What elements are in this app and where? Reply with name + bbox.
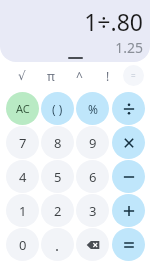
button[interactable]: Multiply [112, 126, 145, 159]
staticText: 4 [19, 168, 27, 186]
button[interactable]: 7 [6, 126, 39, 159]
staticText: π [47, 68, 55, 84]
staticText: = [131, 70, 136, 81]
staticText: % [88, 101, 98, 117]
button[interactable]: 2 [41, 194, 74, 227]
button[interactable]: Equals [112, 228, 145, 261]
button[interactable]: ( ) [41, 92, 74, 125]
button[interactable]: % [76, 92, 109, 125]
button[interactable]: Subtract [112, 160, 145, 193]
button[interactable]: 1 [6, 194, 39, 227]
button[interactable]: 0 [6, 228, 39, 261]
staticText: 2 [54, 202, 62, 220]
staticText: 1÷.80 [84, 6, 143, 37]
staticText: 5 [54, 168, 62, 186]
staticText: ! [106, 68, 110, 84]
button[interactable]: ! [95, 63, 121, 89]
staticText: 8 [54, 134, 62, 152]
button[interactable]: Add [112, 194, 145, 227]
button[interactable]: 4 [6, 160, 39, 193]
button[interactable]: 3 [76, 194, 109, 227]
button[interactable]: More functions [123, 65, 144, 86]
button[interactable]: √ [9, 63, 35, 89]
button[interactable]: . [41, 228, 74, 261]
staticText: ( ) [52, 101, 63, 117]
button[interactable]: Divide [112, 92, 145, 125]
staticText: AC [16, 101, 30, 116]
button[interactable]: π [38, 63, 64, 89]
staticText: ^ [76, 68, 83, 84]
button[interactable]: 9 [76, 126, 109, 159]
button[interactable]: 5 [41, 160, 74, 193]
button[interactable]: 8 [41, 126, 74, 159]
staticText: 6 [89, 168, 97, 186]
staticText: 0 [19, 236, 27, 254]
button[interactable]: ^ [66, 63, 92, 89]
button[interactable]: Backspace [76, 228, 109, 261]
staticText: 3 [89, 202, 97, 220]
button[interactable]: 6 [76, 160, 109, 193]
staticText: 9 [89, 134, 97, 152]
staticText: 1 [19, 202, 27, 220]
staticText: . [55, 235, 60, 255]
staticText: √ [18, 69, 26, 83]
staticText: 7 [19, 134, 27, 152]
staticText: 1.25 [115, 38, 143, 57]
button[interactable]: Expand history [68, 57, 83, 59]
button[interactable]: AC [6, 92, 39, 125]
